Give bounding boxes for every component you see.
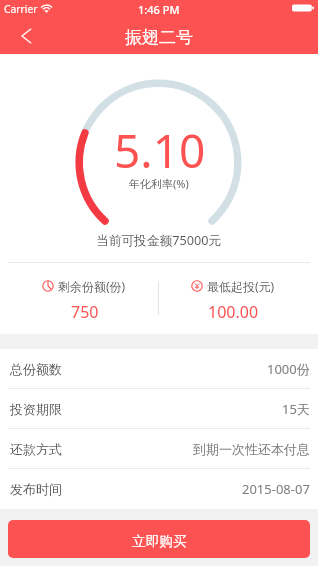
staticText: 发布时间 (10, 481, 62, 497)
staticText: 当前可投金额75000元 (96, 231, 222, 248)
button[interactable]: 最低起投(元) (159, 263, 308, 333)
staticText: 2015-08-07 (242, 480, 310, 498)
staticText: 750 (71, 301, 99, 323)
staticText: 立即购买 (132, 533, 187, 550)
staticText: 15天 (282, 400, 310, 418)
staticText: 振翅二号 (125, 27, 193, 48)
staticText: Carrier (4, 2, 38, 16)
button[interactable]: Back (6, 20, 46, 54)
staticText: 5.10 (114, 119, 206, 182)
staticText: 最低起投(元) (207, 278, 275, 294)
staticText: 1000份 (267, 360, 310, 378)
staticText: 还款方式 (10, 441, 62, 457)
staticText: 1:46 PM (138, 2, 180, 17)
staticText: 剩余份额(份) (58, 278, 126, 294)
button[interactable]: 立即购买 (8, 520, 310, 558)
button[interactable]: 发布时间 (0, 469, 318, 509)
staticText: 年化利率(%) (129, 176, 189, 191)
button[interactable]: 总份额数 (0, 349, 318, 389)
staticText: 100.00 (208, 301, 259, 323)
button[interactable]: 投资期限 (0, 389, 318, 429)
staticText: 到期一次性还本付息 (193, 441, 310, 457)
staticText: 总份额数 (10, 361, 62, 377)
staticText: 投资期限 (10, 401, 62, 417)
button[interactable]: 剩余份额(份) (10, 263, 159, 333)
button[interactable]: 还款方式 (0, 429, 318, 469)
